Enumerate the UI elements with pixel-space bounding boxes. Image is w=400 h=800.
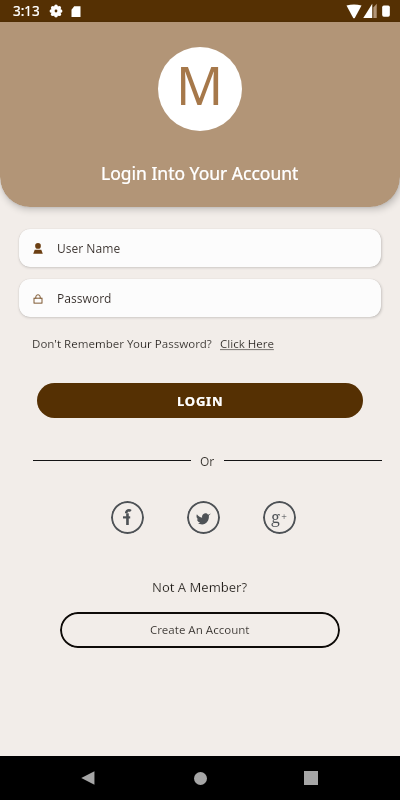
button[interactable]: Create An Account bbox=[60, 612, 340, 648]
button[interactable]: Sign in with Google Plus bbox=[263, 501, 296, 534]
staticText: Don't Remember Your Password? bbox=[32, 336, 212, 352]
button[interactable]: Recent apps bbox=[291, 758, 331, 798]
button[interactable]: Sign in with Facebook bbox=[111, 501, 144, 534]
button[interactable]: Home bbox=[180, 758, 220, 798]
staticText: Login Into Your Account bbox=[101, 161, 299, 185]
staticText: Password bbox=[57, 290, 112, 306]
staticText: Or bbox=[200, 453, 215, 469]
button[interactable]: Password bbox=[19, 279, 381, 317]
button[interactable]: Click Here bbox=[220, 336, 274, 352]
staticText: LOGIN bbox=[177, 392, 224, 410]
staticText: 3:13 bbox=[13, 2, 40, 20]
staticText: User Name bbox=[57, 240, 121, 256]
button[interactable]: LOGIN bbox=[37, 383, 363, 418]
staticText: Create An Account bbox=[150, 622, 250, 638]
staticText: Not A Member? bbox=[152, 578, 248, 595]
staticText: M bbox=[176, 49, 224, 120]
staticText: + bbox=[281, 509, 288, 524]
staticText: g bbox=[271, 505, 281, 528]
button[interactable]: User Name bbox=[19, 229, 381, 267]
button[interactable]: Sign in with Twitter bbox=[187, 501, 220, 534]
button[interactable]: Back bbox=[68, 758, 108, 798]
staticText: Click Here bbox=[220, 336, 274, 352]
